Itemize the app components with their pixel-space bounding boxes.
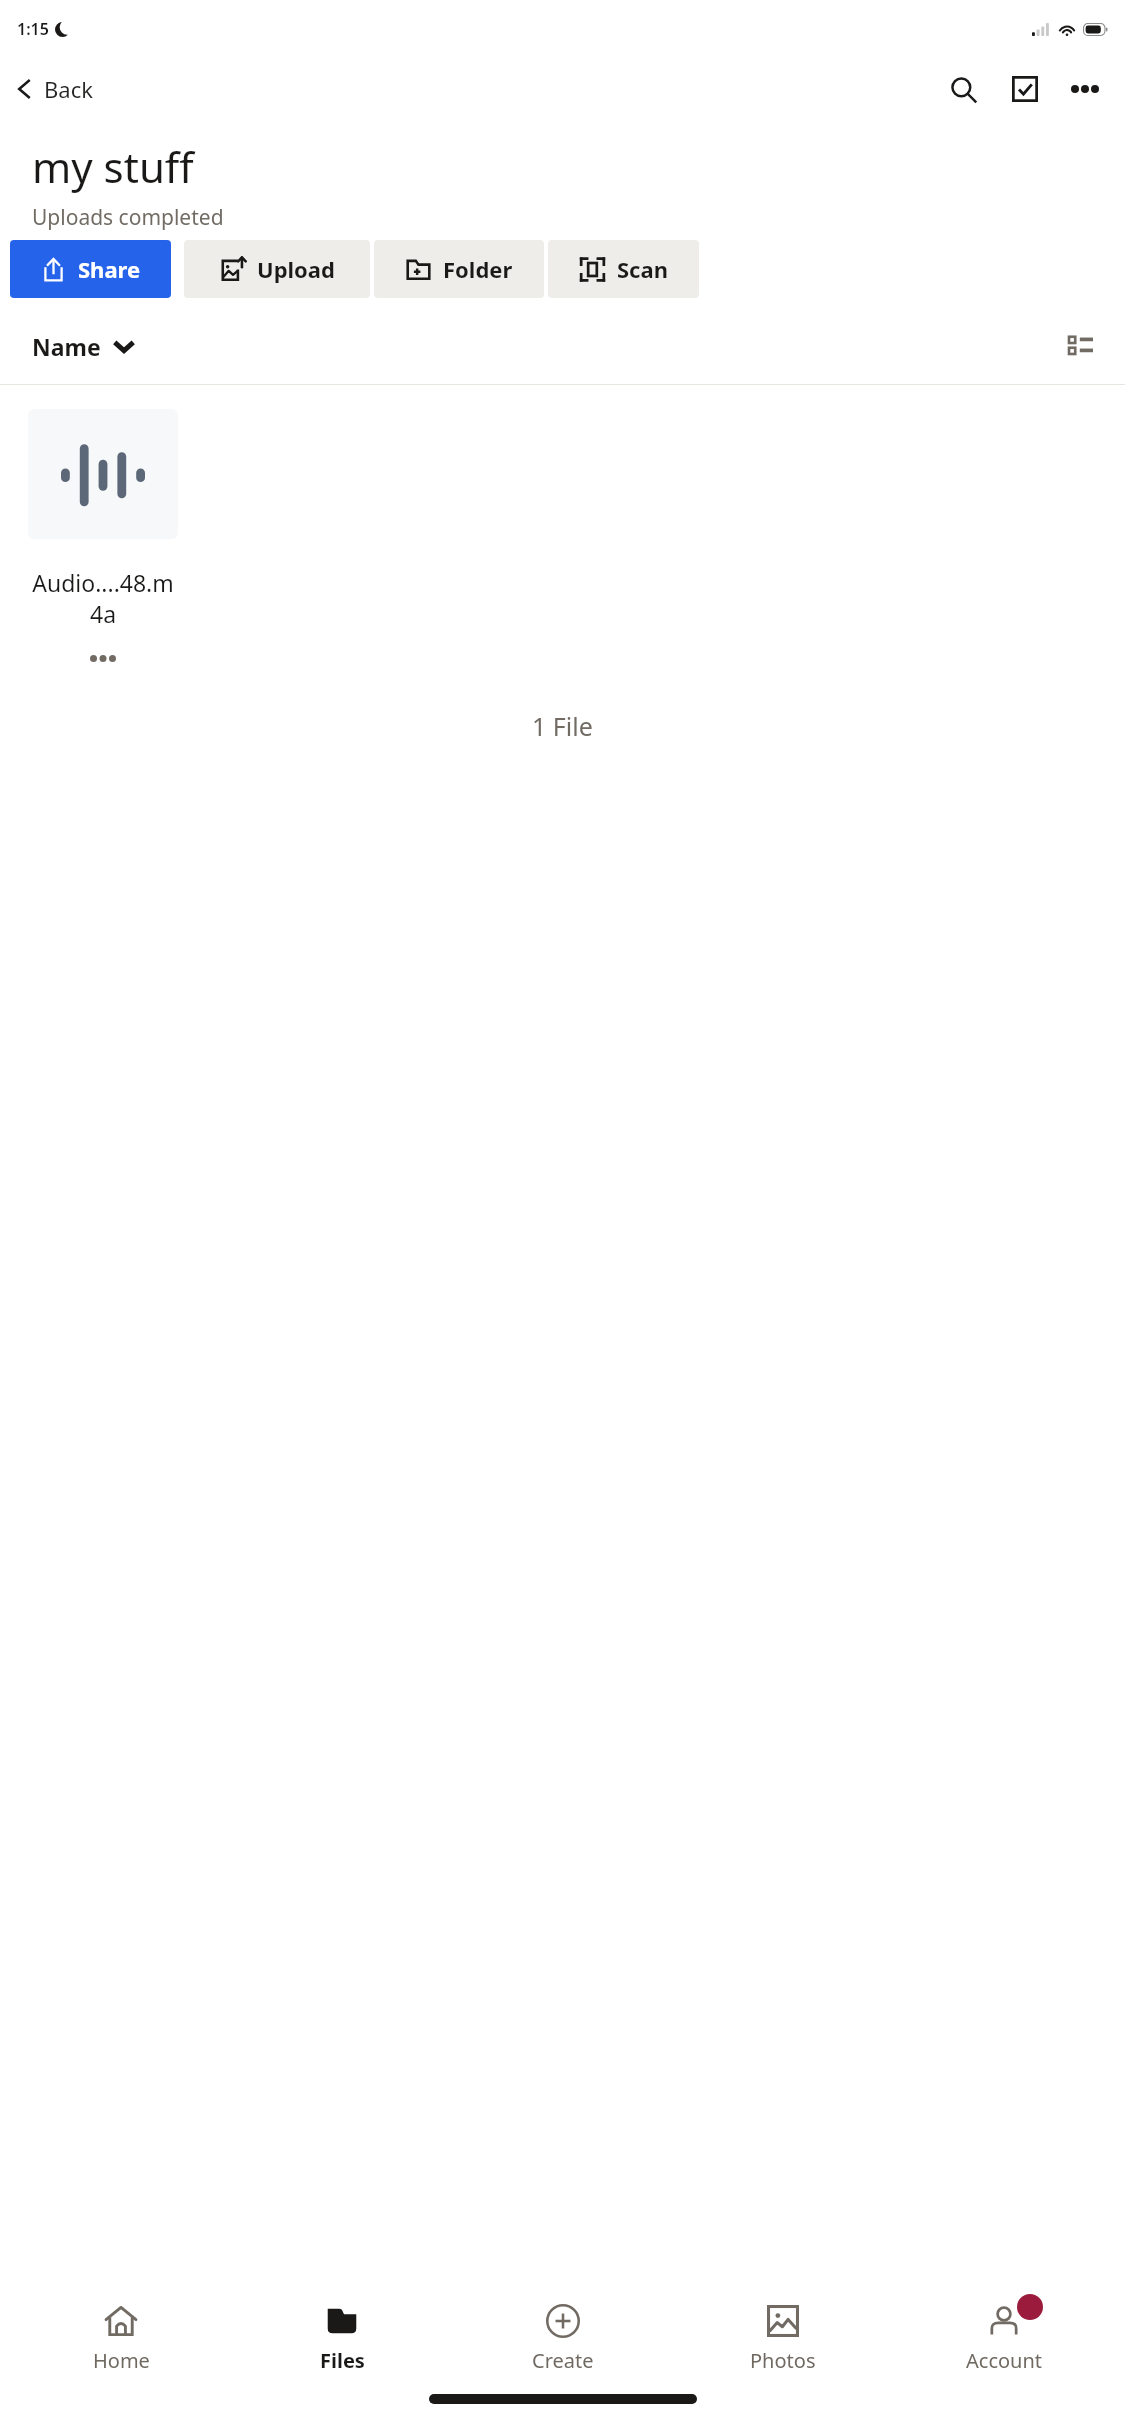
staticText: Share [78, 254, 141, 284]
staticText: Files [320, 2347, 365, 2374]
staticText: Create [532, 2347, 594, 2374]
button[interactable]: Audio....48.m4a [28, 409, 178, 673]
button[interactable]: Select items [999, 63, 1051, 115]
button[interactable]: Home [21, 2297, 221, 2380]
button[interactable]: Share [10, 240, 171, 298]
staticText: 1:15 [17, 18, 49, 40]
staticText: Back [44, 74, 93, 104]
button[interactable]: File options [75, 643, 131, 673]
staticText: Account [966, 2347, 1043, 2374]
button[interactable]: Account [904, 2297, 1104, 2380]
button[interactable]: Scan [548, 240, 699, 298]
button[interactable]: Back [0, 68, 105, 110]
staticText: Scan [617, 254, 668, 284]
staticText: my stuff [32, 138, 194, 195]
staticText: Photos [750, 2347, 816, 2374]
button[interactable]: Create [463, 2297, 663, 2380]
button[interactable]: Name [22, 323, 145, 370]
button[interactable]: Search [937, 63, 989, 115]
button[interactable]: Photos [683, 2297, 883, 2380]
button[interactable]: Change view [1057, 322, 1105, 370]
staticText: Folder [443, 254, 513, 284]
button[interactable]: More options [1059, 63, 1111, 115]
staticText: Name [32, 331, 101, 362]
staticText: 1 File [532, 709, 593, 743]
staticText: Upload [257, 254, 335, 284]
button[interactable]: Folder [374, 240, 544, 298]
staticText: Home [93, 2347, 150, 2374]
button[interactable]: Upload [184, 240, 370, 298]
staticText: Uploads completed [32, 203, 224, 232]
button[interactable]: Files [242, 2297, 442, 2380]
staticText: Audio....48.m4a [28, 567, 178, 629]
